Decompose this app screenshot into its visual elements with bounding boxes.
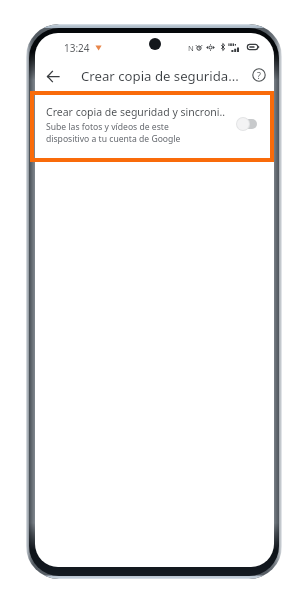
button[interactable]: Back [40, 63, 66, 89]
staticText: N [188, 43, 194, 53]
staticText: Sube las fotos y vídeos de este disposit… [46, 121, 181, 144]
staticText: Crear copia de segurida... [81, 67, 239, 85]
button[interactable]: Crear copia de seguridad y sincroni.. [35, 93, 274, 162]
staticText: 13:24 [64, 41, 90, 55]
staticText: Crear copia de seguridad y sincroni.. [46, 105, 226, 119]
button[interactable]: Help [248, 64, 270, 86]
staticText: ? [257, 69, 261, 81]
button[interactable]: Crear copia de seguridad y sincronizar [232, 113, 261, 135]
